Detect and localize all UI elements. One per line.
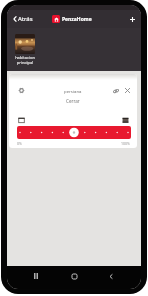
button[interactable]: PenzaHome <box>52 15 92 23</box>
staticText: habitacion principal <box>15 55 35 65</box>
staticText: PenzaHome <box>62 16 92 23</box>
button[interactable]: Home <box>66 268 82 284</box>
staticText: Atrás <box>18 15 33 23</box>
button[interactable]: Settings <box>17 86 26 95</box>
button[interactable]: Recent apps <box>28 268 44 284</box>
button[interactable]: Blind position <box>17 126 131 139</box>
button[interactable]: Back <box>103 268 119 284</box>
staticText: Cerrar <box>66 98 80 104</box>
staticText: 0% <box>17 141 22 146</box>
staticText: persiana <box>64 88 82 94</box>
button[interactable]: Open blind <box>18 117 25 123</box>
button[interactable]: Atrás <box>7 10 39 28</box>
button[interactable]: Add <box>123 10 141 28</box>
button[interactable]: Close blind <box>122 117 129 123</box>
button[interactable]: Close <box>123 86 132 95</box>
staticText: 100% <box>121 141 130 146</box>
button[interactable]: habitacion principal <box>15 34 35 65</box>
button[interactable]: Link <box>111 86 120 95</box>
